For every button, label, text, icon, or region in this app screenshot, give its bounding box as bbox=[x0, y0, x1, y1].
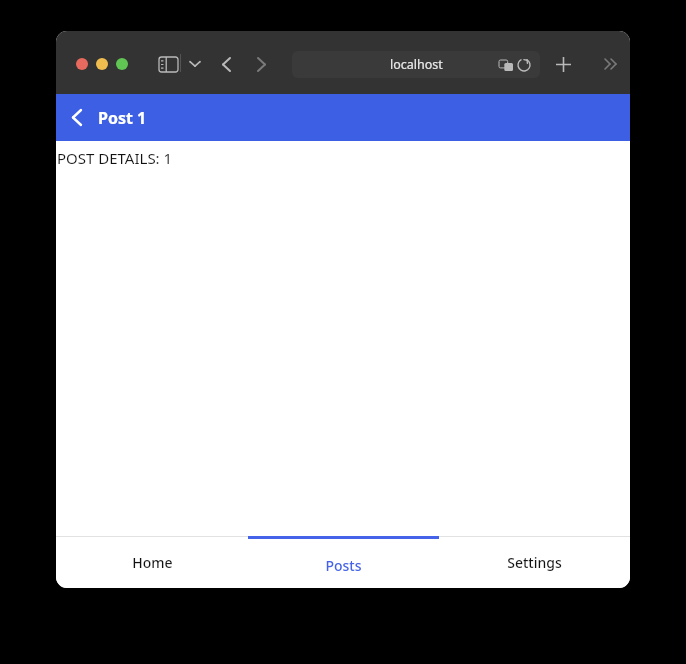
button[interactable]: Window control bbox=[76, 58, 88, 70]
button[interactable]: Posts bbox=[248, 536, 439, 588]
staticText: Home bbox=[132, 553, 173, 572]
staticText: localhost bbox=[390, 56, 443, 73]
button[interactable]: Window control bbox=[96, 58, 108, 70]
staticText: POST DETAILS: 1 bbox=[57, 148, 173, 168]
button[interactable]: Reload bbox=[515, 56, 533, 74]
button[interactable]: Back bbox=[213, 51, 239, 77]
button[interactable]: Forward bbox=[248, 51, 274, 77]
button[interactable]: More bbox=[597, 51, 623, 77]
staticText: Post 1 bbox=[98, 107, 147, 129]
staticText: Settings bbox=[507, 553, 562, 572]
button[interactable]: localhost bbox=[292, 51, 540, 78]
button[interactable]: Window control bbox=[116, 58, 128, 70]
button[interactable]: Home bbox=[56, 536, 248, 588]
button[interactable]: Settings bbox=[439, 536, 630, 588]
staticText: Posts bbox=[325, 556, 362, 575]
button[interactable]: Toggle sidebar bbox=[155, 53, 181, 75]
button[interactable]: Back bbox=[56, 94, 98, 141]
button[interactable]: Translate bbox=[497, 56, 515, 74]
button[interactable]: New tab bbox=[549, 50, 577, 78]
button[interactable]: Tab overview bbox=[183, 53, 207, 75]
